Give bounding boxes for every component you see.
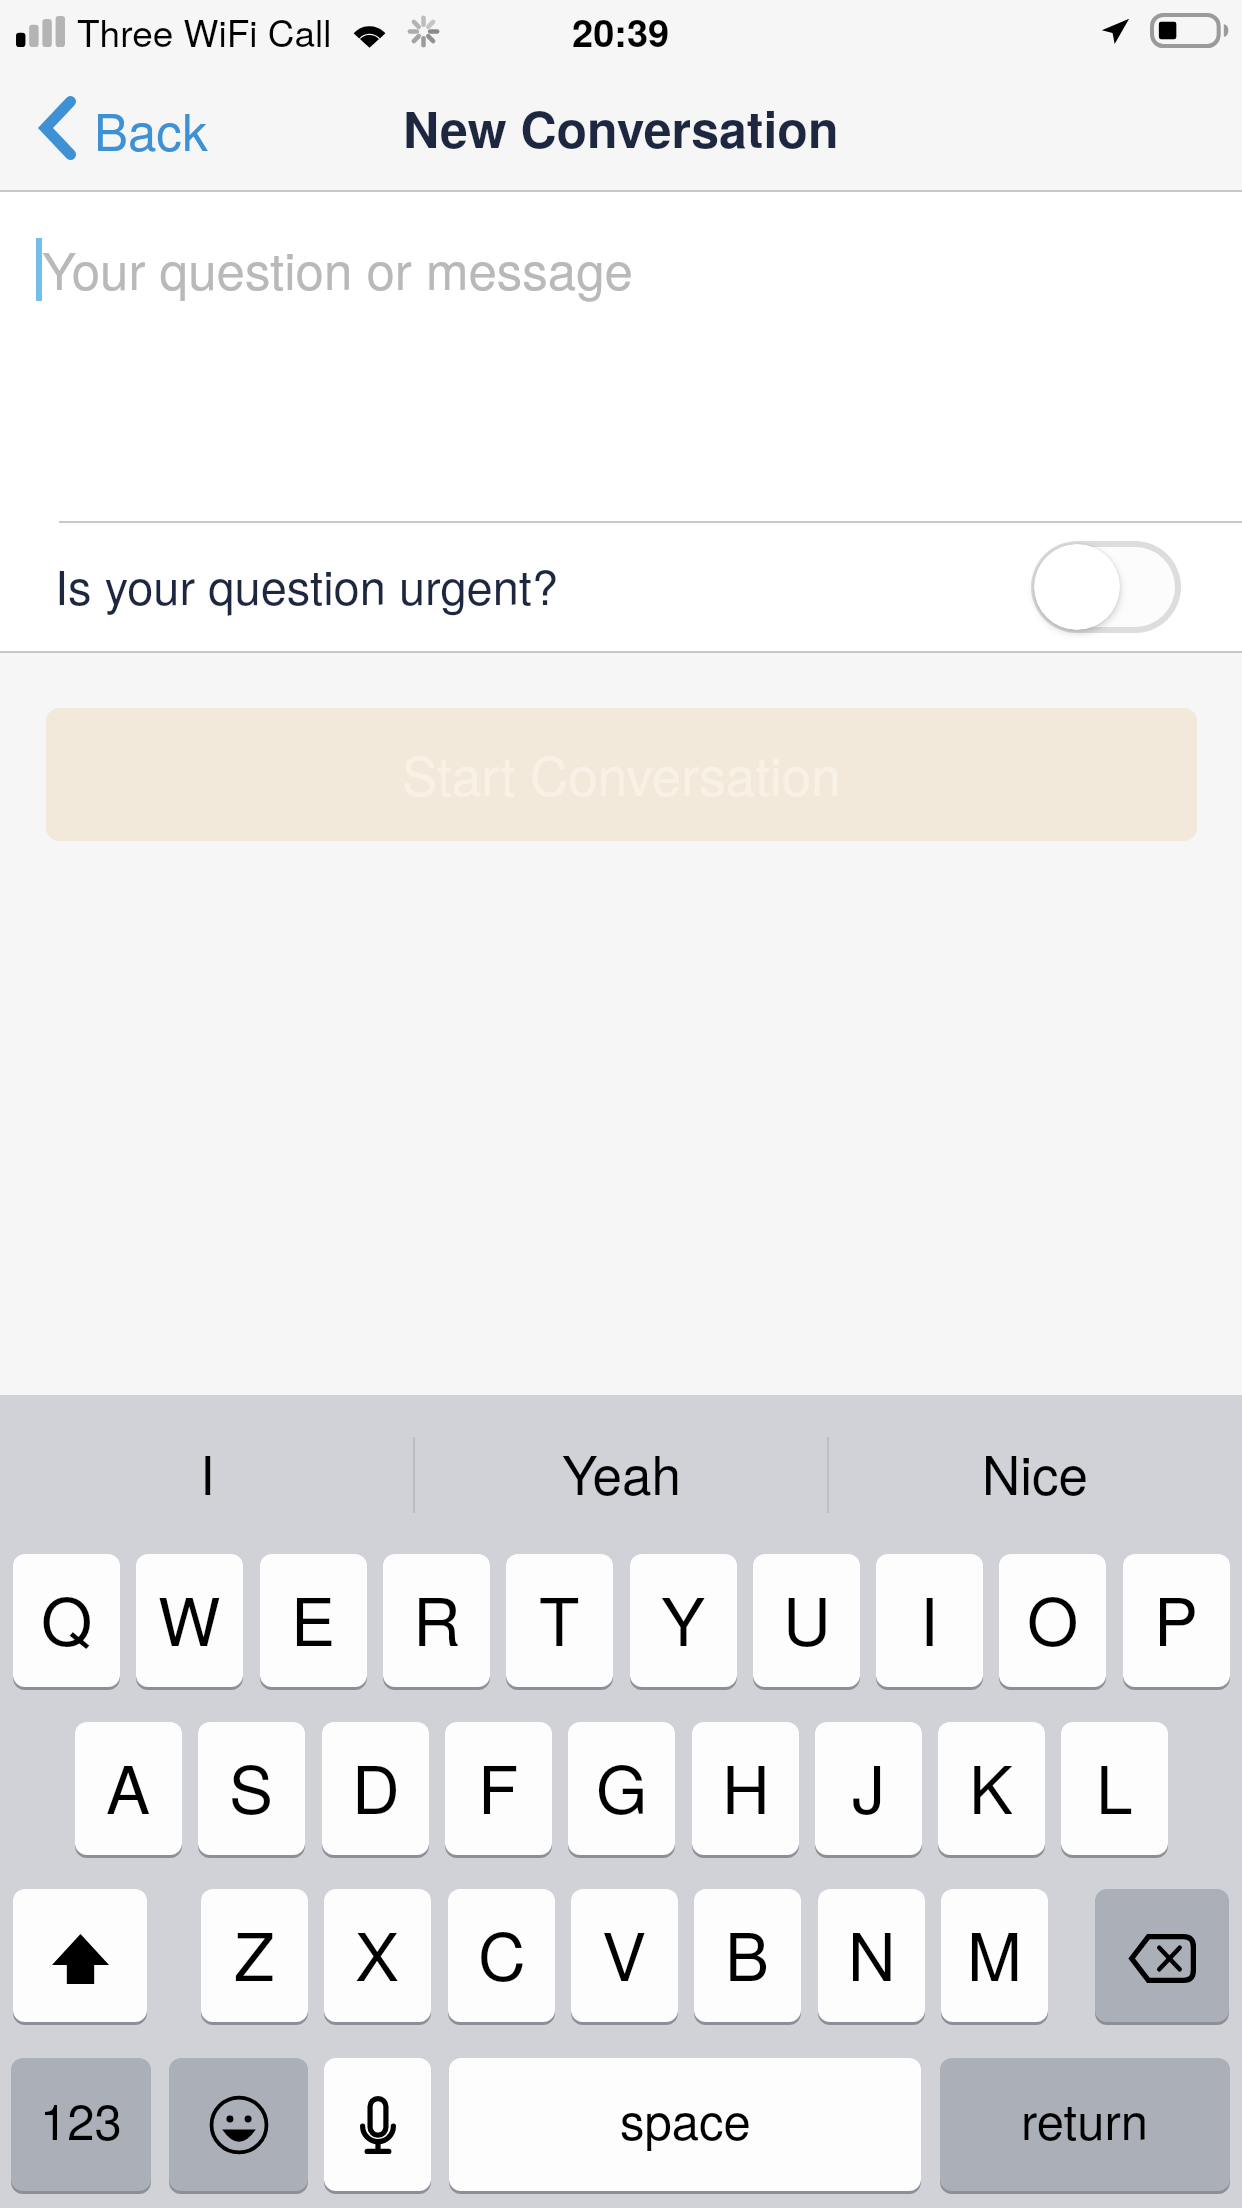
button[interactable]: Is your question urgent? bbox=[0, 523, 1242, 651]
staticText: return bbox=[1021, 2084, 1149, 2154]
staticText: New Conversation bbox=[403, 92, 839, 164]
button[interactable]: Shift bbox=[13, 1889, 147, 2022]
staticText: S bbox=[229, 1738, 274, 1833]
staticText: R bbox=[413, 1570, 461, 1665]
button[interactable]: Z bbox=[201, 1889, 308, 2022]
button[interactable]: Back bbox=[0, 78, 234, 178]
button[interactable]: Y bbox=[630, 1554, 737, 1687]
button[interactable]: T bbox=[506, 1554, 613, 1687]
other: Shift bbox=[52, 1934, 109, 1984]
button[interactable]: I bbox=[0, 1395, 414, 1548]
button[interactable]: F bbox=[445, 1722, 552, 1855]
staticText: Y bbox=[661, 1570, 706, 1665]
staticText: Back bbox=[94, 92, 208, 165]
staticText: K bbox=[969, 1738, 1014, 1833]
button[interactable]: J bbox=[815, 1722, 922, 1855]
staticText: B bbox=[725, 1905, 770, 2000]
other: Backspace bbox=[1128, 1934, 1196, 1983]
button[interactable]: B bbox=[694, 1889, 801, 2022]
button[interactable]: Yeah bbox=[414, 1395, 828, 1548]
staticText: I bbox=[920, 1570, 939, 1665]
staticText: T bbox=[539, 1570, 580, 1665]
staticText: 20:39 bbox=[572, 4, 670, 58]
button[interactable]: N bbox=[818, 1889, 925, 2022]
button[interactable]: C bbox=[448, 1889, 555, 2022]
staticText: Three WiFi Call bbox=[77, 5, 332, 58]
button[interactable]: return bbox=[940, 2058, 1230, 2191]
button[interactable]: R bbox=[383, 1554, 490, 1687]
button[interactable]: E bbox=[260, 1554, 367, 1687]
staticText: I bbox=[200, 1434, 215, 1510]
button[interactable]: I bbox=[876, 1554, 983, 1687]
staticText: V bbox=[602, 1905, 647, 2000]
staticText: E bbox=[291, 1570, 336, 1665]
other: Urgent toggle bbox=[1031, 541, 1181, 633]
button[interactable]: V bbox=[571, 1889, 678, 2022]
staticText: D bbox=[352, 1738, 400, 1833]
button[interactable]: U bbox=[753, 1554, 860, 1687]
staticText: H bbox=[722, 1738, 770, 1833]
button[interactable]: X bbox=[324, 1889, 431, 2022]
staticText: U bbox=[783, 1570, 831, 1665]
other: Emoji bbox=[209, 2095, 269, 2155]
button[interactable]: 123 bbox=[11, 2058, 151, 2191]
button[interactable]: H bbox=[692, 1722, 799, 1855]
button[interactable]: Q bbox=[13, 1554, 120, 1687]
button[interactable]: Backspace bbox=[1095, 1889, 1229, 2022]
button[interactable]: W bbox=[136, 1554, 243, 1687]
button[interactable]: K bbox=[938, 1722, 1045, 1855]
staticText: Your question or message bbox=[42, 231, 633, 304]
staticText: O bbox=[1027, 1570, 1079, 1665]
button[interactable]: O bbox=[999, 1554, 1106, 1687]
staticText: Is your question urgent? bbox=[55, 551, 559, 618]
staticText: X bbox=[355, 1905, 400, 2000]
staticText: Nice bbox=[982, 1434, 1088, 1510]
staticText: J bbox=[852, 1738, 885, 1833]
staticText: M bbox=[967, 1905, 1022, 2000]
staticText: Z bbox=[234, 1905, 275, 2000]
button[interactable]: M bbox=[941, 1889, 1048, 2022]
staticText: 123 bbox=[40, 2084, 122, 2154]
button[interactable]: Emoji bbox=[169, 2058, 308, 2191]
button[interactable]: Nice bbox=[828, 1395, 1242, 1548]
staticText: F bbox=[478, 1738, 519, 1833]
staticText: Start Conversation bbox=[402, 735, 841, 811]
staticText: G bbox=[596, 1738, 648, 1833]
staticText: space bbox=[620, 2084, 751, 2154]
staticText: W bbox=[158, 1570, 221, 1665]
button[interactable]: S bbox=[198, 1722, 305, 1855]
other: Dictate bbox=[360, 2096, 396, 2154]
button[interactable]: D bbox=[322, 1722, 429, 1855]
staticText: C bbox=[478, 1905, 526, 2000]
staticText: P bbox=[1154, 1570, 1199, 1665]
button[interactable]: P bbox=[1123, 1554, 1230, 1687]
button[interactable]: A bbox=[75, 1722, 182, 1855]
button[interactable]: G bbox=[568, 1722, 675, 1855]
staticText: Q bbox=[41, 1570, 93, 1665]
button[interactable]: L bbox=[1061, 1722, 1168, 1855]
staticText: Yeah bbox=[562, 1434, 681, 1510]
button[interactable]: space bbox=[449, 2058, 921, 2191]
staticText: A bbox=[106, 1738, 151, 1833]
staticText: L bbox=[1096, 1738, 1133, 1833]
staticText: N bbox=[848, 1905, 896, 2000]
button[interactable]: Dictate bbox=[324, 2058, 431, 2191]
